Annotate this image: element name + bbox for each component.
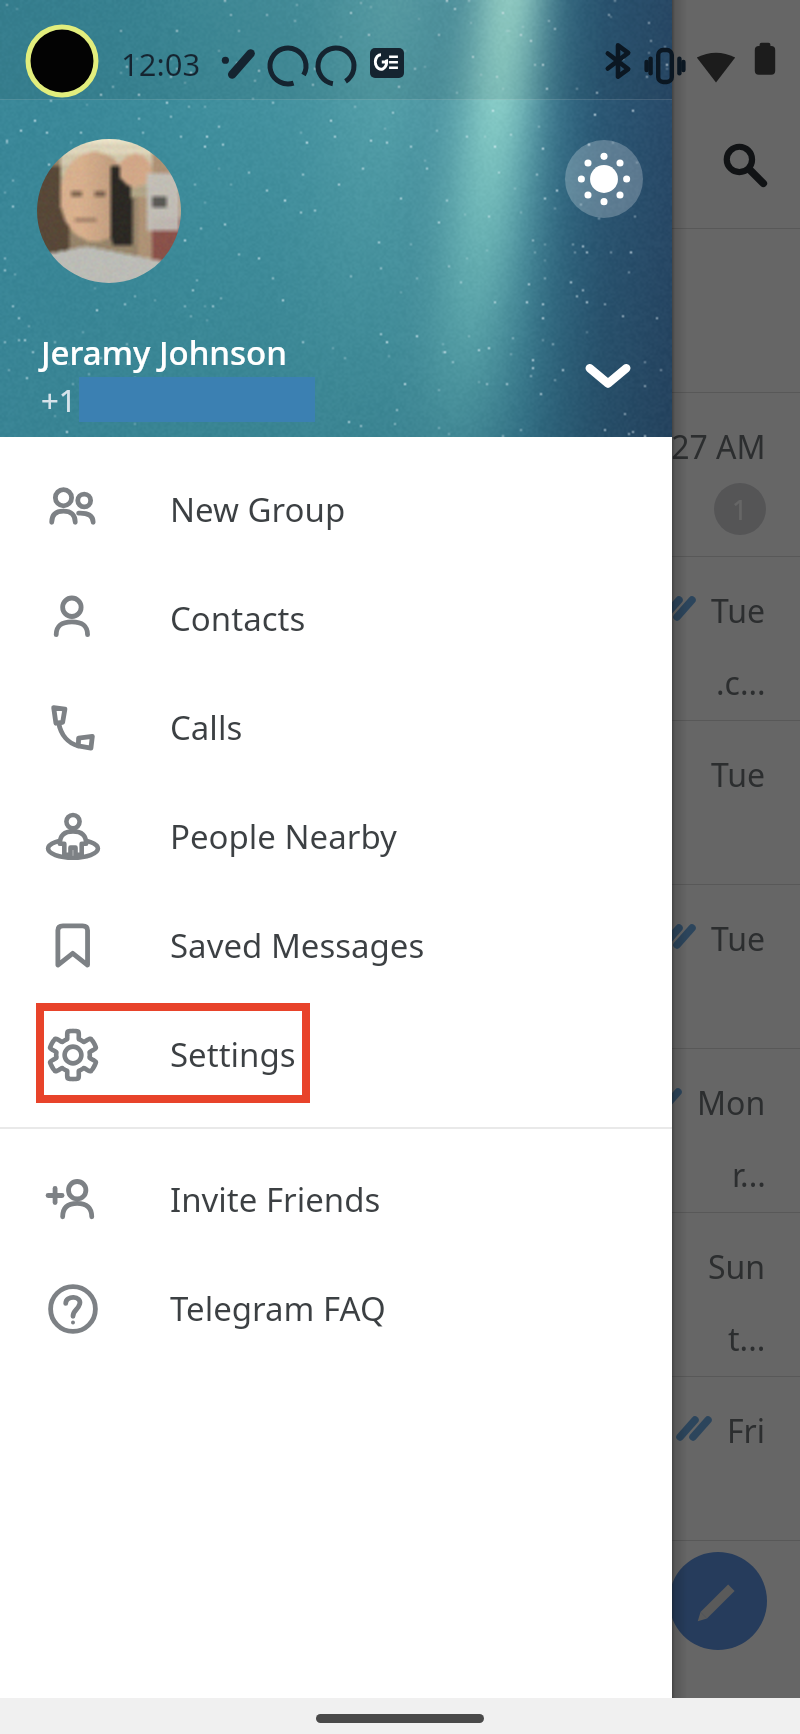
- button[interactable]: 10:27 AM: [0, 393, 800, 557]
- button[interactable]: Tue: [0, 885, 800, 1049]
- staticText: Tue: [711, 589, 766, 633]
- staticText: Settings: [170, 1032, 296, 1077]
- staticText: r...: [732, 1153, 766, 1197]
- staticText: Contacts: [170, 596, 306, 641]
- button[interactable]: Toggle day night theme: [565, 140, 643, 218]
- button[interactable]: Invite Friends: [0, 1145, 672, 1254]
- button[interactable]: [0, 1541, 800, 1705]
- staticText: 12:03: [121, 43, 201, 85]
- button[interactable]: People Nearby: [0, 782, 672, 891]
- staticText: Tue: [711, 753, 766, 797]
- staticText: Calls: [170, 705, 243, 750]
- staticText: 1: [732, 491, 748, 528]
- staticText: Invite Friends: [170, 1177, 381, 1222]
- button[interactable]: Settings: [0, 1000, 672, 1109]
- button[interactable]: Calls: [0, 673, 672, 782]
- staticText: .c...: [716, 661, 766, 705]
- staticText: Sun: [708, 1245, 766, 1289]
- staticText: Fri: [727, 1409, 766, 1453]
- staticText: People Nearby: [170, 814, 397, 859]
- button[interactable]: Telegram FAQ: [0, 1254, 672, 1363]
- button[interactable]: Tue: [0, 721, 800, 885]
- button[interactable]: Profile photo: [37, 139, 181, 283]
- staticText: t...: [728, 1317, 766, 1361]
- button[interactable]: New message: [669, 1552, 767, 1650]
- staticText: 10:27 AM: [626, 425, 766, 469]
- button[interactable]: Mon: [0, 1049, 800, 1213]
- staticText: Jeramy Johnson: [41, 330, 287, 375]
- button[interactable]: Tue: [0, 557, 800, 721]
- button[interactable]: Contacts: [0, 564, 672, 673]
- staticText: Telegram FAQ: [170, 1286, 386, 1331]
- button[interactable]: Sun: [0, 1213, 800, 1377]
- button[interactable]: Search: [708, 128, 780, 200]
- button[interactable]: Expand accounts list: [566, 332, 650, 416]
- staticText: New Group: [170, 487, 346, 532]
- button[interactable]: Fri: [0, 1377, 800, 1541]
- staticText: Tue: [711, 917, 766, 961]
- button[interactable]: [0, 229, 800, 393]
- staticText: +1: [41, 379, 77, 421]
- staticText: Mon: [697, 1081, 766, 1125]
- button[interactable]: New Group: [0, 455, 672, 564]
- staticText: Saved Messages: [170, 923, 425, 968]
- button[interactable]: Saved Messages: [0, 891, 672, 1000]
